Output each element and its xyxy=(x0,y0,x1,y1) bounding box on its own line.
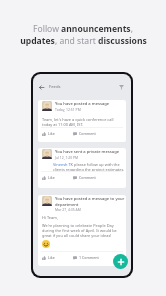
staticText: Like xyxy=(48,131,55,136)
staticText: Team, let's have a quick conference call… xyxy=(42,117,114,127)
staticText: You have posted a message xyxy=(55,101,110,107)
button[interactable]: You have sent a private message xyxy=(38,148,126,188)
button[interactable]: 1 Comment xyxy=(73,252,99,263)
button[interactable]: You have posted a message to your depart… xyxy=(38,195,126,266)
button[interactable]: Like xyxy=(42,252,55,263)
button[interactable]: Like xyxy=(42,172,55,183)
staticText: Hi Team, xyxy=(42,215,58,220)
staticText: Follow announcements, xyxy=(33,23,133,35)
staticText: Jul 12, 1:20 PM xyxy=(55,155,79,160)
button[interactable]: Like xyxy=(42,128,55,139)
button[interactable]: Create post xyxy=(113,254,128,269)
button[interactable]: Comment xyxy=(73,172,96,183)
staticText: 1 Comment xyxy=(79,255,99,260)
button[interactable]: Filter xyxy=(116,82,126,92)
button[interactable]: Back xyxy=(36,82,46,92)
button[interactable]: You have posted a message xyxy=(38,100,126,142)
staticText: Feeds xyxy=(49,84,61,90)
staticText: You have posted a message to your depart… xyxy=(55,196,125,207)
staticText: updates, and start discussions xyxy=(20,35,147,47)
staticText: You have sent a private message xyxy=(55,149,120,155)
staticText: Mar 27, 4:35 AM xyxy=(55,207,81,212)
staticText: We're planning to celebrate People Day d… xyxy=(42,223,117,238)
button[interactable]: Comment xyxy=(73,128,96,139)
staticText: Today, 12:51 PM xyxy=(55,107,81,112)
staticText: Like xyxy=(48,255,55,260)
staticText: Like xyxy=(48,175,55,180)
staticText: Comment xyxy=(79,131,96,136)
staticText: Vineesh TK please follow up with the cli… xyxy=(53,162,125,172)
staticText: Comment xyxy=(79,175,96,180)
